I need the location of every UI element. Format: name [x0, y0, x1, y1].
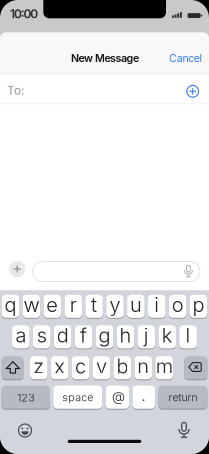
- staticText: x: [54, 354, 65, 378]
- button[interactable]: 123: [2, 385, 50, 409]
- staticText: d: [57, 323, 69, 347]
- button[interactable]: Dictation: [175, 422, 193, 438]
- staticText: New Message: [71, 52, 139, 64]
- button[interactable]: e: [43, 294, 61, 318]
- staticText: s: [37, 323, 47, 347]
- button[interactable]: Cancel: [169, 52, 202, 64]
- staticText: c: [75, 354, 86, 378]
- button[interactable]: Shift: [2, 356, 23, 380]
- staticText: .: [141, 386, 146, 405]
- staticText: z: [33, 354, 44, 378]
- staticText: g: [98, 323, 110, 347]
- button[interactable]: r: [64, 294, 82, 318]
- staticText: To:: [7, 83, 24, 97]
- button[interactable]: f: [75, 325, 92, 349]
- staticText: o: [172, 293, 184, 316]
- staticText: m: [156, 354, 173, 378]
- button[interactable]: y: [106, 294, 124, 318]
- button[interactable]: l: [179, 325, 197, 349]
- staticText: f: [80, 323, 87, 347]
- button[interactable]: x: [51, 356, 68, 380]
- button[interactable]: i: [148, 294, 166, 318]
- staticText: l: [186, 323, 191, 347]
- staticText: v: [96, 354, 107, 378]
- staticText: e: [46, 293, 58, 316]
- button[interactable]: m: [155, 356, 173, 380]
- staticText: k: [162, 323, 173, 347]
- button[interactable]: s: [33, 325, 51, 349]
- button[interactable]: Delete: [184, 356, 207, 380]
- staticText: 10:00: [10, 7, 38, 21]
- button[interactable]: t: [85, 294, 103, 318]
- button[interactable]: q: [2, 294, 19, 318]
- staticText: n: [137, 354, 149, 378]
- button[interactable]: j: [137, 325, 155, 349]
- button[interactable]: c: [72, 356, 89, 380]
- button[interactable]: k: [158, 325, 176, 349]
- staticText: y: [109, 293, 120, 316]
- staticText: w: [23, 293, 39, 316]
- button[interactable]: space: [53, 385, 102, 409]
- button[interactable]: n: [134, 356, 152, 380]
- staticText: i: [154, 293, 159, 316]
- staticText: @: [112, 389, 125, 404]
- button[interactable]: d: [54, 325, 71, 349]
- button[interactable]: v: [93, 356, 110, 380]
- button[interactable]: a: [12, 325, 30, 349]
- button[interactable]: Emoji: [18, 423, 32, 437]
- staticText: 123: [17, 391, 34, 404]
- button[interactable]: @: [105, 385, 129, 409]
- button[interactable]: b: [114, 356, 131, 380]
- staticText: h: [119, 323, 131, 347]
- button[interactable]: g: [96, 325, 113, 349]
- button[interactable]: .: [132, 385, 155, 409]
- staticText: a: [15, 323, 26, 347]
- staticText: t: [91, 293, 97, 316]
- staticText: space: [62, 391, 93, 404]
- button[interactable]: h: [117, 325, 134, 349]
- button[interactable]: Dictate: [181, 265, 196, 278]
- button[interactable]: return: [158, 385, 207, 409]
- staticText: j: [144, 323, 149, 347]
- button[interactable]: Apps: [9, 261, 25, 277]
- staticText: r: [70, 293, 77, 316]
- button[interactable]: o: [169, 294, 186, 318]
- staticText: q: [4, 293, 16, 316]
- button[interactable]: w: [23, 294, 40, 318]
- staticText: p: [193, 293, 205, 316]
- button[interactable]: u: [127, 294, 145, 318]
- staticText: u: [130, 293, 142, 316]
- staticText: return: [168, 391, 197, 404]
- staticText: b: [116, 354, 128, 378]
- button[interactable]: Add Contact: [186, 85, 199, 98]
- staticText: Cancel: [169, 52, 202, 64]
- button[interactable]: z: [30, 356, 48, 380]
- button[interactable]: p: [190, 294, 207, 318]
